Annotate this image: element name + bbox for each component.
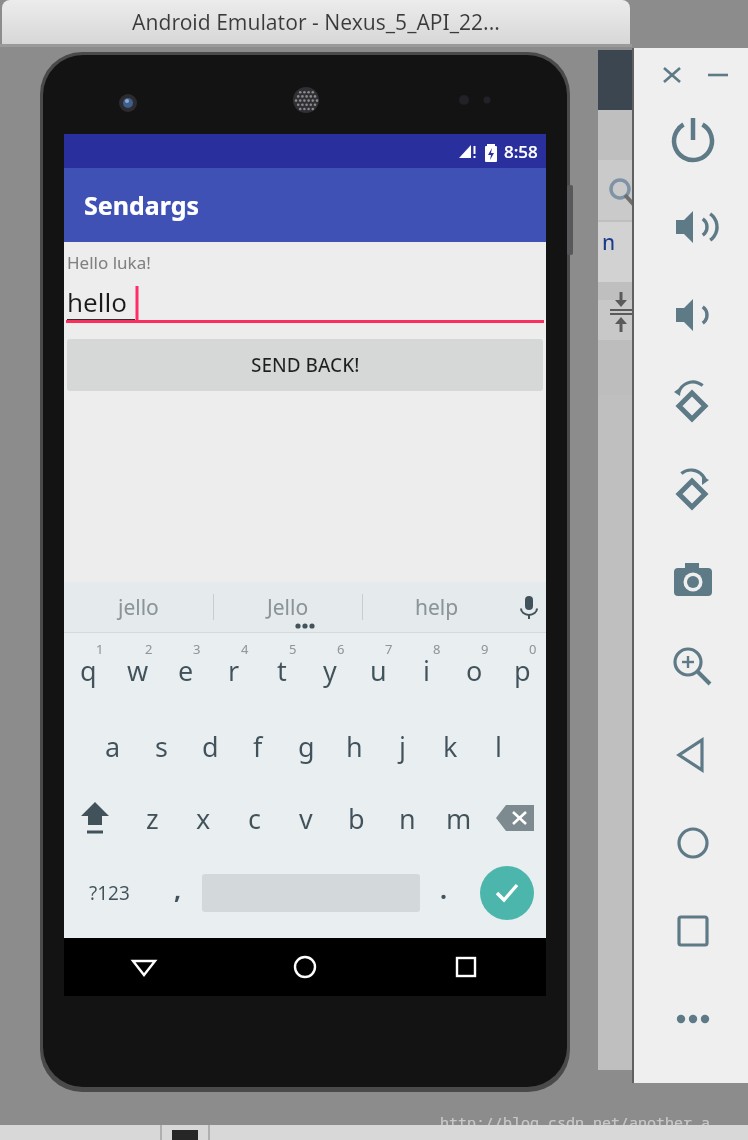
- button[interactable]: c: [229, 782, 280, 854]
- button[interactable]: z: [126, 782, 178, 854]
- staticText: 9: [481, 640, 489, 658]
- staticText: n: [399, 800, 416, 837]
- staticText: x: [196, 800, 211, 837]
- button[interactable]: Back: [668, 730, 718, 780]
- staticText: z: [146, 800, 159, 837]
- button[interactable]: m: [433, 782, 484, 854]
- button[interactable]: Rotate right: [668, 466, 718, 516]
- staticText: o: [466, 652, 483, 689]
- button[interactable]: n: [382, 782, 433, 854]
- button[interactable]: 1: [64, 638, 113, 710]
- button[interactable]: Close: [656, 60, 688, 88]
- button[interactable]: Volume up: [668, 202, 718, 252]
- button[interactable]: .: [420, 854, 468, 932]
- staticText: Sendargs: [84, 188, 200, 222]
- staticText: j: [399, 728, 406, 765]
- button[interactable]: 7: [354, 638, 402, 710]
- staticText: h: [346, 728, 363, 765]
- staticText: .: [440, 872, 448, 906]
- staticText: y: [323, 652, 337, 689]
- button[interactable]: Rotate left: [668, 378, 718, 428]
- button[interactable]: More: [668, 994, 718, 1044]
- staticText: 4: [241, 640, 249, 658]
- button[interactable]: k: [426, 710, 474, 782]
- button[interactable]: Power: [668, 114, 718, 164]
- button[interactable]: Shift: [64, 782, 126, 854]
- staticText: 5: [289, 640, 297, 658]
- button[interactable]: Back: [64, 938, 224, 996]
- button[interactable]: h: [330, 710, 378, 782]
- button[interactable]: Done: [468, 854, 546, 932]
- staticText: p: [514, 652, 531, 689]
- button[interactable]: x: [178, 782, 229, 854]
- staticText: f: [253, 728, 263, 765]
- button[interactable]: j: [378, 710, 426, 782]
- staticText: a: [105, 728, 121, 765]
- button[interactable]: SEND BACK!: [67, 339, 543, 391]
- staticText: Hello luka!: [67, 251, 151, 274]
- staticText: ?123: [89, 880, 130, 906]
- button[interactable]: 3: [162, 638, 210, 710]
- staticText: 7: [385, 640, 393, 658]
- staticText: q: [80, 652, 97, 689]
- staticText: help: [415, 593, 459, 622]
- staticText: ,: [174, 872, 182, 906]
- staticText: 1: [96, 640, 104, 658]
- staticText: Android Emulator - Nexus_5_API_22...: [2, 8, 630, 37]
- button[interactable]: a: [88, 710, 137, 782]
- button[interactable]: Home: [224, 938, 385, 996]
- staticText: 2: [145, 640, 153, 658]
- button[interactable]: 0: [498, 638, 546, 710]
- button[interactable]: Overview: [668, 906, 718, 956]
- staticText: c: [248, 800, 261, 837]
- staticText: hello: [67, 284, 127, 319]
- button[interactable]: 6: [306, 638, 354, 710]
- staticText: i: [423, 652, 430, 689]
- staticText: b: [348, 800, 365, 837]
- staticText: e: [178, 652, 194, 689]
- staticText: l: [495, 728, 502, 765]
- staticText: w: [127, 652, 149, 689]
- button[interactable]: d: [186, 710, 234, 782]
- button[interactable]: v: [280, 782, 331, 854]
- button[interactable]: s: [137, 710, 186, 782]
- button[interactable]: Voice input: [511, 582, 546, 632]
- staticText: g: [298, 728, 315, 765]
- staticText: SEND BACK!: [251, 352, 360, 378]
- button[interactable]: help: [362, 582, 511, 632]
- button[interactable]: 5: [258, 638, 306, 710]
- button[interactable]: ,: [154, 854, 202, 932]
- button[interactable]: f: [234, 710, 282, 782]
- staticText: s: [155, 728, 168, 765]
- button[interactable]: b: [331, 782, 382, 854]
- button[interactable]: Zoom: [668, 642, 718, 692]
- staticText: 0: [529, 640, 537, 658]
- button[interactable]: Jello: [213, 582, 362, 632]
- staticText: 3: [193, 640, 201, 658]
- button[interactable]: Recents: [385, 938, 546, 996]
- button[interactable]: g: [282, 710, 330, 782]
- staticText: 6: [337, 640, 345, 658]
- staticText: k: [443, 728, 458, 765]
- button[interactable]: 8: [402, 638, 450, 710]
- button[interactable]: l: [474, 710, 522, 782]
- staticText: Jello: [267, 593, 309, 622]
- button[interactable]: Home: [668, 818, 718, 868]
- button[interactable]: Screenshot: [668, 554, 718, 604]
- button[interactable]: 9: [450, 638, 498, 710]
- staticText: n: [602, 228, 616, 257]
- staticText: 8: [433, 640, 441, 658]
- staticText: m: [446, 800, 472, 837]
- staticText: http://blog.csdn.net/another_a: [440, 1112, 711, 1132]
- button[interactable]: 2: [113, 638, 162, 710]
- staticText: t: [277, 652, 287, 689]
- staticText: d: [202, 728, 219, 765]
- button[interactable]: ?123: [64, 854, 154, 932]
- button[interactable]: jello: [64, 582, 213, 632]
- button[interactable]: Backspace: [484, 782, 546, 854]
- button[interactable]: 4: [210, 638, 258, 710]
- staticText: v: [299, 800, 313, 837]
- button[interactable]: Volume down: [668, 290, 718, 340]
- button[interactable]: Minimize: [702, 60, 734, 88]
